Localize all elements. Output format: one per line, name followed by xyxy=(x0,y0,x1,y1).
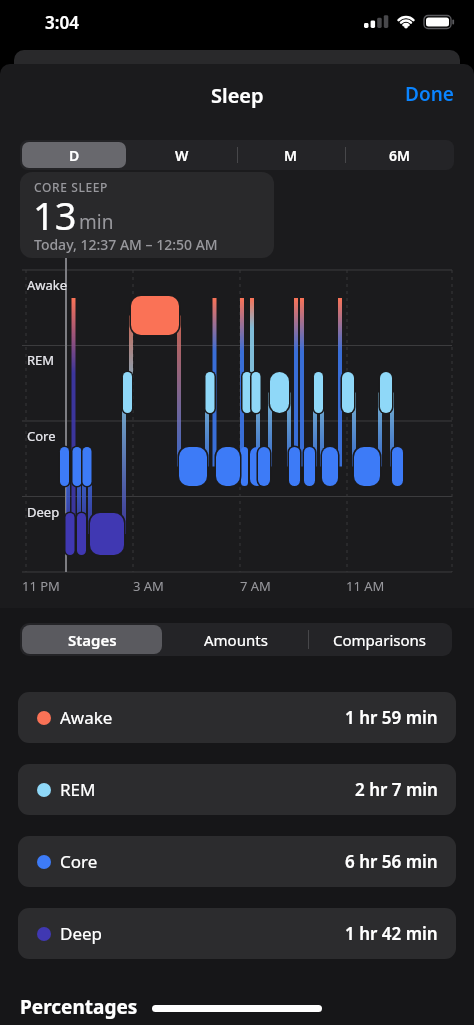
staticText: W xyxy=(175,146,189,165)
staticText: REM xyxy=(27,351,55,369)
staticText: Percentages xyxy=(20,994,138,1020)
staticText: 2 hr 7 min xyxy=(355,778,438,801)
staticText: 6M xyxy=(389,146,411,165)
button[interactable]: Done xyxy=(398,78,460,110)
staticText: Amounts xyxy=(204,630,268,650)
staticText: 11 PM xyxy=(22,577,60,595)
staticText: Stages xyxy=(68,630,117,650)
staticText: D xyxy=(69,146,80,165)
button[interactable]: M xyxy=(236,140,345,170)
staticText: Deep xyxy=(27,503,60,521)
button[interactable]: Core xyxy=(18,836,456,887)
staticText: 1 hr 59 min xyxy=(345,706,438,729)
button[interactable]: Amounts xyxy=(164,623,308,656)
staticText: min xyxy=(79,209,114,235)
staticText: REM xyxy=(60,778,96,801)
staticText: Deep xyxy=(60,922,103,945)
staticText: 3:04 xyxy=(45,11,79,34)
staticText: 6 hr 56 min xyxy=(345,850,438,873)
staticText: Done xyxy=(405,81,454,107)
staticText: CORE SLEEP xyxy=(34,179,108,195)
staticText: 11 AM xyxy=(346,577,385,595)
button[interactable]: 6M xyxy=(345,140,454,170)
staticText: Sleep xyxy=(211,82,264,109)
button[interactable]: Stages xyxy=(20,623,164,656)
button[interactable]: REM xyxy=(18,764,456,815)
staticText: Awake xyxy=(60,706,113,729)
staticText: 7 AM xyxy=(240,577,271,595)
button[interactable]: Comparisons xyxy=(308,623,452,656)
staticText: 3 AM xyxy=(133,577,164,595)
staticText: M xyxy=(284,146,298,165)
staticText: Comparisons xyxy=(333,630,427,650)
staticText: 1 hr 42 min xyxy=(345,922,438,945)
button[interactable]: Awake xyxy=(18,692,456,743)
staticText: Today, 12:37 AM – 12:50 AM xyxy=(34,235,218,254)
staticText: Awake xyxy=(27,276,68,294)
staticText: 13 xyxy=(33,189,77,241)
button[interactable]: D xyxy=(20,140,128,170)
button[interactable]: W xyxy=(128,140,236,170)
staticText: Core xyxy=(60,850,98,873)
staticText: Core xyxy=(27,427,56,445)
button[interactable]: Deep xyxy=(18,908,456,959)
